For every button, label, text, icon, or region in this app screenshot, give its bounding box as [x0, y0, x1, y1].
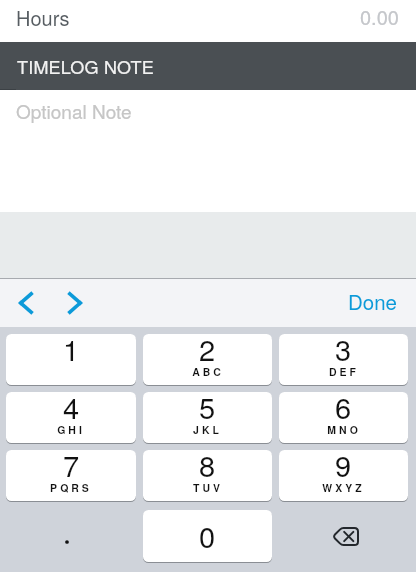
button[interactable]: 5 [143, 392, 272, 443]
staticText: WXYZ [322, 480, 365, 495]
staticText: 7 [63, 450, 80, 486]
staticText: 6 [335, 392, 352, 428]
staticText: 2 [199, 334, 216, 370]
button[interactable]: 6 [279, 392, 408, 443]
staticText: 3 [335, 334, 352, 370]
staticText: 8 [199, 450, 216, 486]
button[interactable]: 3 [279, 334, 408, 385]
staticText: 9 [335, 450, 352, 486]
staticText: Hours [16, 3, 70, 32]
staticText: GHI [57, 422, 85, 437]
staticText: Done [348, 286, 397, 315]
staticText: TIMELOG NOTE [17, 53, 154, 79]
staticText: Optional Note [16, 97, 132, 124]
staticText: PQRS [50, 480, 92, 495]
button[interactable]: 2 [143, 334, 272, 385]
button[interactable]: Decimal point [6, 510, 136, 562]
staticText: 1 [63, 334, 80, 370]
staticText: 0.00 [360, 2, 399, 31]
button[interactable]: Previous field [8, 279, 43, 327]
staticText: JKL [193, 422, 222, 437]
staticText: 0 [199, 515, 216, 557]
button[interactable]: Delete [279, 510, 408, 562]
button[interactable]: 7 [6, 450, 136, 501]
button[interactable]: Optional Note [0, 90, 416, 212]
button[interactable]: 0 [143, 510, 272, 562]
button[interactable]: 8 [143, 450, 272, 501]
staticText: MNO [327, 422, 361, 437]
button[interactable]: Done [327, 278, 416, 327]
button[interactable]: 9 [279, 450, 408, 501]
button[interactable]: 4 [6, 392, 136, 443]
staticText: 5 [199, 392, 216, 428]
staticText: DEF [329, 364, 359, 379]
staticText: ABC [192, 364, 224, 379]
button[interactable]: Next field [57, 279, 92, 327]
button[interactable]: 1 [6, 334, 136, 385]
button[interactable]: Hours [0, 0, 416, 42]
staticText: 4 [63, 392, 80, 428]
staticText: TUV [193, 480, 223, 495]
